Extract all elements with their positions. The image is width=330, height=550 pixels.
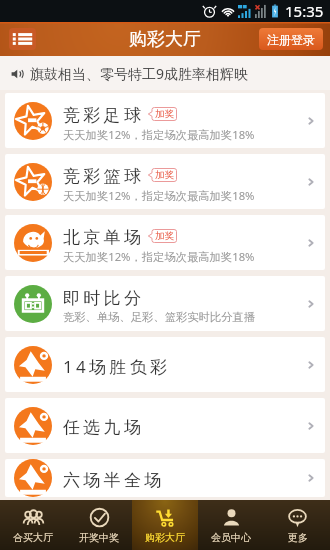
staticText: 更多 [288, 531, 308, 544]
staticText: 14场胜负彩 [63, 355, 171, 378]
staticText: 天天加奖12%，指定场次最高加奖18% [63, 249, 255, 264]
staticText: 购彩大厅 [129, 28, 201, 51]
staticText: 合买大厅 [13, 531, 53, 544]
staticText: 注册登录 [267, 32, 315, 47]
staticText: 任选九场 [63, 417, 145, 438]
button[interactable]: 竞彩篮球 [5, 154, 325, 209]
button[interactable]: 14场胜负彩 [5, 337, 325, 392]
button[interactable]: 合买大厅 [0, 500, 66, 550]
staticText: 加奖 [155, 230, 174, 242]
staticText: 旗鼓相当、零号特工9成胜率相辉映 [30, 64, 249, 83]
button[interactable]: 北京单场 [5, 215, 325, 270]
staticText: 竞彩足球 [63, 105, 145, 126]
button[interactable]: 购彩大厅 [132, 500, 198, 550]
staticText: 北京单场 [63, 227, 145, 248]
staticText: 六场半全场 [63, 470, 165, 491]
staticText: 天天加奖12%，指定场次最高加奖18% [63, 188, 255, 203]
button[interactable]: 六场半全场 [5, 459, 325, 497]
staticText: 竞彩篮球 [63, 166, 145, 187]
staticText: 15:35 [285, 1, 324, 21]
button[interactable]: 开奖中奖 [66, 500, 132, 550]
button[interactable]: 即时比分 [5, 276, 325, 331]
button[interactable]: 任选九场 [5, 398, 325, 453]
button[interactable]: 会员中心 [198, 500, 264, 550]
staticText: 天天加奖12%，指定场次最高加奖18% [63, 127, 255, 142]
button[interactable]: 更多 [264, 500, 330, 550]
staticText: 开奖中奖 [79, 531, 119, 544]
button[interactable]: 注册登录 [259, 28, 323, 50]
staticText: 加奖 [155, 169, 174, 181]
staticText: 购彩大厅 [145, 531, 185, 544]
button[interactable]: Menu [9, 28, 36, 50]
staticText: 加奖 [155, 108, 174, 120]
staticText: 竞彩、单场、足彩、篮彩实时比分直播 [63, 310, 256, 324]
staticText: 会员中心 [211, 531, 251, 544]
staticText: 即时比分 [63, 288, 145, 309]
button[interactable]: 竞彩足球 [5, 93, 325, 148]
